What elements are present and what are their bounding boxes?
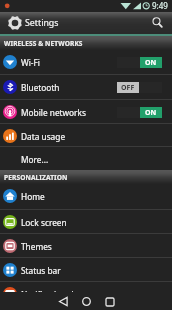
staticText: Bluetooth	[21, 82, 60, 93]
staticText: PERSONALIZATION	[4, 173, 68, 182]
button[interactable]: Off	[117, 75, 162, 99]
button[interactable]: Notification drawer	[0, 282, 172, 292]
staticText: OFF	[121, 83, 135, 93]
staticText: Lock screen	[21, 217, 67, 228]
button[interactable]: Search	[147, 12, 169, 34]
button[interactable]: Status bar	[0, 258, 172, 282]
button[interactable]: Home	[0, 184, 172, 208]
staticText: Data usage	[21, 131, 66, 142]
staticText: Wi-Fi	[21, 57, 40, 68]
staticText: WIRELESS & NETWORKS	[4, 39, 83, 48]
button[interactable]: Data usage	[0, 124, 172, 148]
staticText: 9:49	[152, 0, 168, 11]
staticText: Status bar	[21, 265, 61, 276]
button[interactable]: Back	[55, 293, 72, 310]
staticText: Themes	[21, 241, 52, 252]
button[interactable]: Themes	[0, 234, 172, 258]
button[interactable]: Home	[78, 293, 95, 310]
staticText: ON	[145, 108, 157, 118]
button[interactable]: Recent apps	[101, 293, 118, 310]
button[interactable]: On	[117, 50, 162, 74]
staticText: Home	[21, 191, 45, 202]
button[interactable]: On	[117, 100, 162, 124]
staticText: Notification drawer	[21, 289, 97, 292]
staticText: More...	[21, 154, 49, 165]
staticText: ON	[145, 58, 157, 68]
button[interactable]: Wi-Fi	[0, 50, 172, 74]
button[interactable]: Bluetooth	[0, 75, 172, 99]
button[interactable]: Mobile networks	[0, 100, 172, 124]
staticText: Mobile networks	[21, 107, 86, 118]
button[interactable]: More...	[0, 147, 172, 171]
button[interactable]: Lock screen	[0, 210, 172, 234]
staticText: Settings	[25, 17, 59, 29]
